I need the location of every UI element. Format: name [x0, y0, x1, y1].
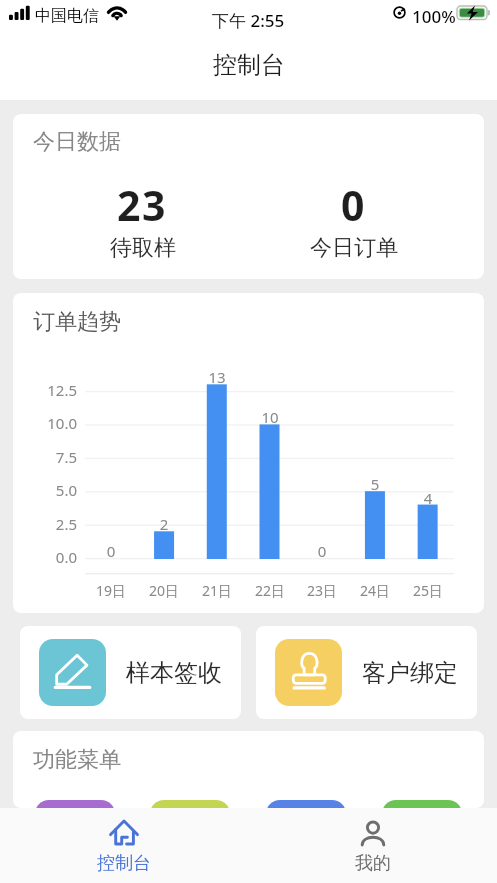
staticText: 中国电信 [35, 6, 99, 26]
staticText: 0.0 [13, 547, 77, 567]
staticText: 10 [248, 407, 292, 427]
staticText: 25日 [402, 581, 454, 600]
staticText: 7.5 [13, 447, 77, 467]
staticText: 客户绑定 [362, 658, 458, 688]
staticText: 22日 [244, 581, 296, 600]
button[interactable]: 控制台 [0, 808, 248, 883]
staticText: 控制台 [213, 50, 285, 80]
staticText: 0 [341, 177, 367, 233]
button[interactable]: 样本签收 [20, 626, 241, 719]
button[interactable]: 客户绑定 [256, 626, 477, 719]
staticText: 待取样 [110, 234, 176, 262]
staticText: 下午 2:55 [212, 9, 285, 32]
button[interactable]: 我的 [248, 808, 497, 883]
staticText: 订单趋势 [33, 308, 121, 336]
staticText: 13 [195, 367, 239, 387]
staticText: 今日数据 [33, 128, 121, 156]
staticText: 控制台 [97, 852, 151, 875]
staticText: 4 [406, 488, 450, 508]
staticText: 2.5 [13, 514, 77, 534]
staticText: 2 [142, 514, 186, 534]
staticText: 12.5 [13, 380, 77, 400]
staticText: 23 [117, 177, 168, 233]
staticText: 24日 [349, 581, 401, 600]
staticText: 21日 [191, 581, 243, 600]
staticText: 23日 [296, 581, 348, 600]
staticText: 20日 [138, 581, 190, 600]
staticText: 今日订单 [310, 234, 398, 262]
staticText: 功能菜单 [33, 746, 121, 774]
staticText: 5.0 [13, 480, 77, 500]
staticText: 0 [89, 541, 133, 561]
staticText: 我的 [355, 852, 391, 875]
staticText: 10.0 [13, 413, 77, 433]
button[interactable] [266, 800, 346, 808]
button[interactable] [382, 800, 462, 808]
staticText: 100% [412, 5, 456, 28]
button[interactable] [150, 800, 230, 808]
staticText: 19日 [85, 581, 137, 600]
staticText: 样本签收 [126, 658, 222, 688]
staticText: 0 [300, 541, 344, 561]
staticText: 5 [353, 474, 397, 494]
button[interactable] [35, 800, 115, 808]
